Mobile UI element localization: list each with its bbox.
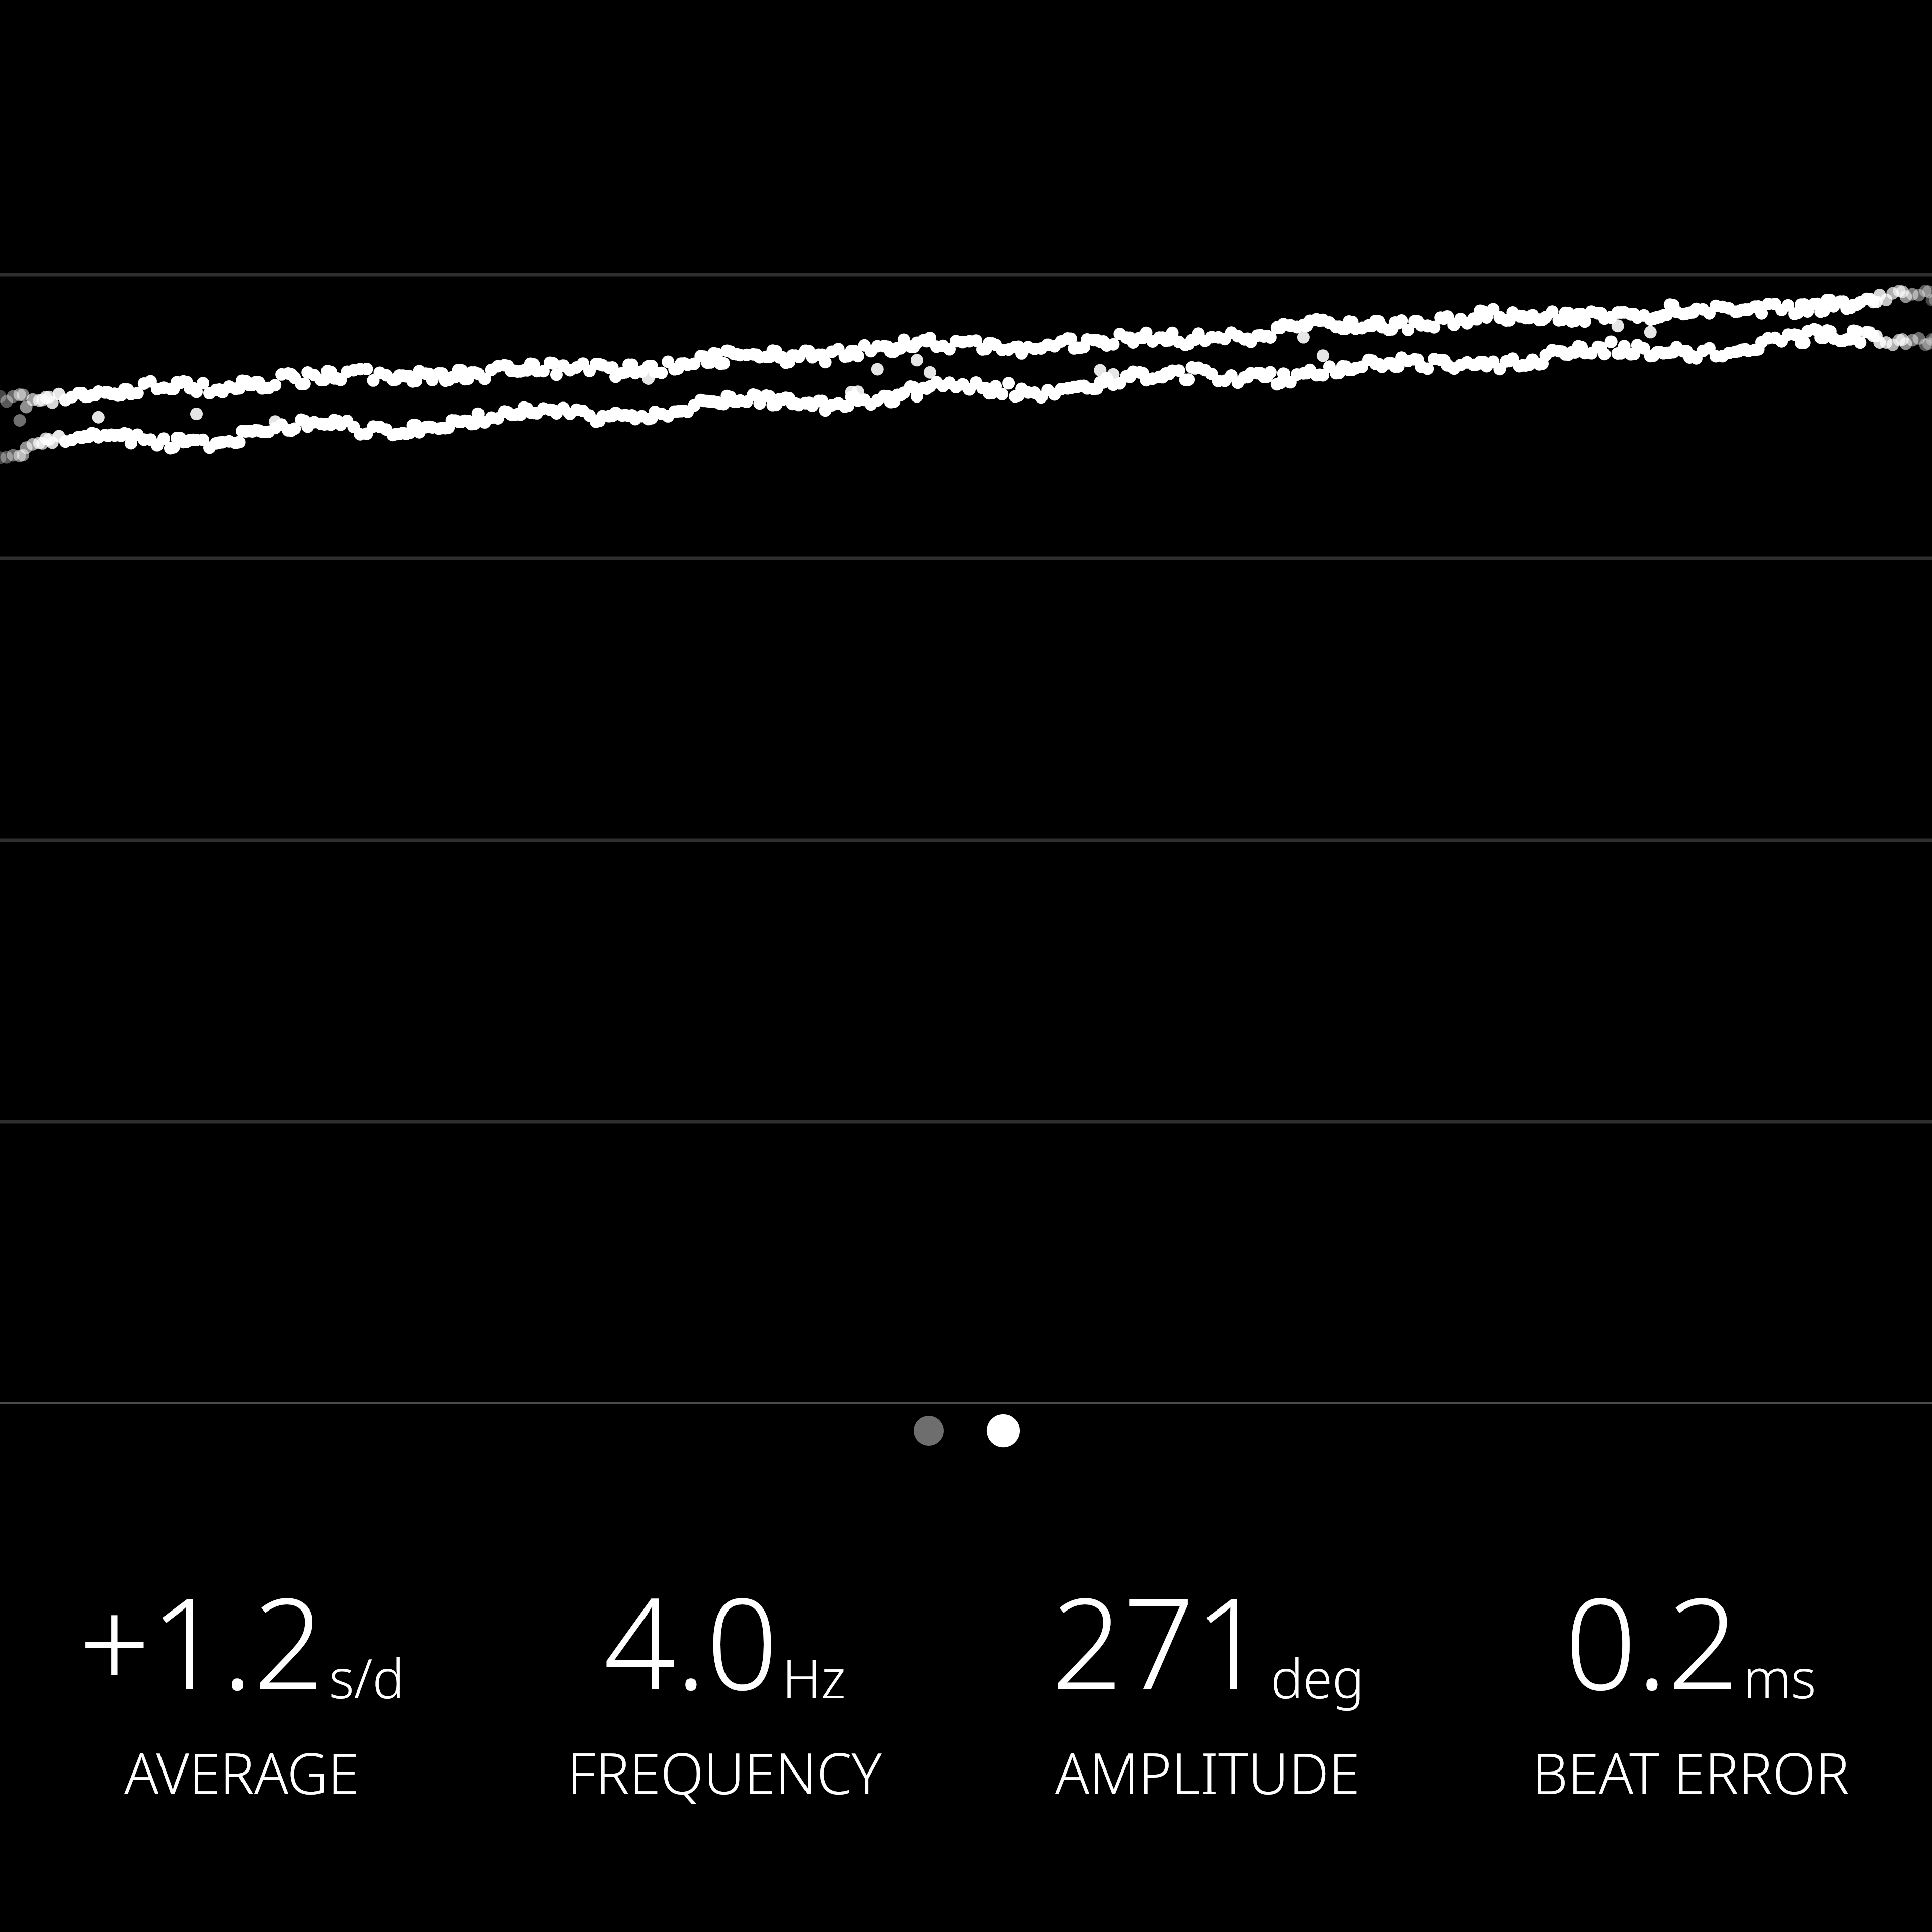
staticText: ms bbox=[1743, 1641, 1816, 1714]
staticText: 271 bbox=[1051, 1555, 1267, 1727]
button[interactable] bbox=[0, 0, 1932, 1402]
button[interactable]: 271 bbox=[966, 1548, 1449, 1932]
staticText: 0.2 bbox=[1565, 1555, 1739, 1727]
button[interactable]: +1.2 bbox=[0, 1548, 483, 1932]
staticText: Hz bbox=[782, 1641, 846, 1714]
button[interactable]: 4.0 bbox=[483, 1548, 966, 1932]
button[interactable]: 0.2 bbox=[1449, 1548, 1932, 1932]
staticText: FREQUENCY bbox=[567, 1734, 882, 1811]
staticText: 4.0 bbox=[604, 1555, 778, 1727]
staticText: AMPLITUDE bbox=[1055, 1734, 1360, 1811]
staticText: s/d bbox=[329, 1641, 405, 1714]
button[interactable]: Page 1 bbox=[909, 1411, 948, 1451]
staticText: AVERAGE bbox=[124, 1734, 359, 1811]
staticText: +1.2 bbox=[78, 1555, 325, 1727]
button[interactable]: Page 2, selected bbox=[984, 1411, 1023, 1451]
staticText: BEAT ERROR bbox=[1532, 1734, 1849, 1811]
staticText: deg bbox=[1271, 1641, 1364, 1714]
